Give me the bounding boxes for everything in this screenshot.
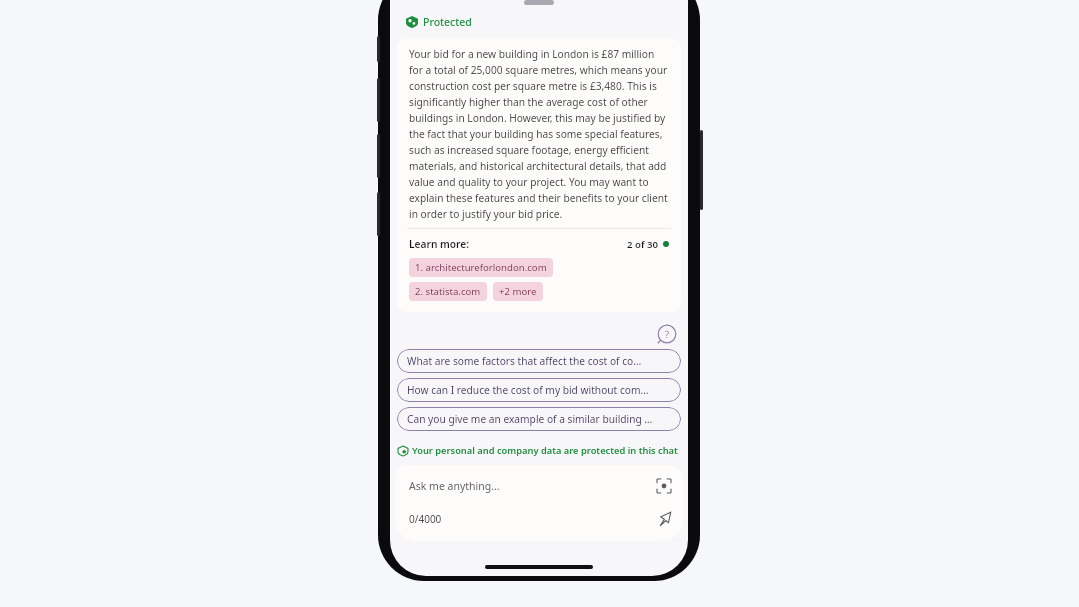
staticText: 2. statista.com: [415, 285, 481, 298]
button[interactable]: What are some factors that affect the co…: [397, 349, 681, 373]
button[interactable]: Can you give me an example of a similar …: [397, 407, 681, 431]
staticText: 1. architectureforlondon.com: [415, 261, 547, 274]
button[interactable]: Your bid for a new building in London is…: [397, 38, 681, 312]
staticText: ?: [665, 328, 670, 341]
staticText: 0/4000: [409, 512, 442, 526]
button[interactable]: Send: [656, 511, 672, 527]
staticText: Learn more:: [409, 237, 470, 251]
button[interactable]: +2 more: [493, 282, 543, 301]
button[interactable]: Ask me anything…: [395, 465, 683, 541]
button[interactable]: Scan: [657, 479, 671, 493]
staticText: Ask me anything…: [409, 479, 500, 493]
staticText: Protected: [423, 15, 472, 29]
staticText: How can I reduce the cost of my bid with…: [407, 383, 649, 397]
button[interactable]: Help: [657, 324, 677, 344]
button[interactable]: 2. statista.com: [409, 282, 487, 301]
staticText: What are some factors that affect the co…: [407, 354, 642, 368]
staticText: 2 of 30: [627, 238, 658, 251]
staticText: Your personal and company data are prote…: [412, 444, 678, 457]
staticText: Your bid for a new building in London is…: [409, 47, 669, 221]
staticText: Can you give me an example of a similar …: [407, 412, 653, 426]
button[interactable]: 1. architectureforlondon.com: [409, 258, 553, 277]
staticText: +2 more: [499, 285, 537, 298]
button[interactable]: How can I reduce the cost of my bid with…: [397, 378, 681, 402]
